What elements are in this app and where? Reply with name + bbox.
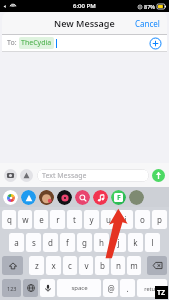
button[interactable]: Change keyboard xyxy=(23,279,38,297)
button[interactable]: f xyxy=(60,233,75,252)
staticText: t xyxy=(73,214,76,225)
button[interactable]: s xyxy=(26,233,41,252)
button[interactable]: App Store xyxy=(20,169,33,182)
staticText: Text Message xyxy=(42,171,87,181)
button[interactable]: d xyxy=(43,233,58,252)
button[interactable]: Cancel xyxy=(128,14,167,33)
staticText: TheCydia xyxy=(21,38,52,48)
button[interactable]: App 7 xyxy=(129,190,144,205)
button[interactable]: m xyxy=(127,256,141,275)
staticText: New Message xyxy=(54,17,115,29)
button[interactable]: o xyxy=(135,210,150,229)
staticText: s xyxy=(32,237,36,248)
button[interactable]: e xyxy=(34,210,48,229)
button[interactable]: TheCydia xyxy=(21,38,52,48)
button[interactable]: . xyxy=(120,279,135,297)
button[interactable]: q xyxy=(2,210,16,229)
button[interactable]: @ xyxy=(103,279,118,297)
staticText: return xyxy=(144,285,161,292)
button[interactable]: b xyxy=(95,256,109,275)
staticText: l xyxy=(151,237,154,248)
staticText: . xyxy=(126,283,129,294)
staticText: To: xyxy=(7,38,17,48)
button[interactable]: space xyxy=(57,279,101,297)
button[interactable] xyxy=(40,279,55,297)
button[interactable]: u xyxy=(101,210,116,229)
staticText: @ xyxy=(107,283,115,294)
staticText: y xyxy=(89,214,94,225)
button[interactable]: l xyxy=(145,233,160,252)
button[interactable]: n xyxy=(111,256,125,275)
button[interactable]: x xyxy=(46,256,61,275)
button[interactable]: Send xyxy=(152,169,165,182)
button[interactable]: Shift xyxy=(2,256,23,275)
button[interactable]: t xyxy=(67,210,82,229)
staticText: 6:00 PM xyxy=(73,2,96,10)
staticText: 87% xyxy=(144,3,155,10)
staticText: c xyxy=(68,260,72,271)
button[interactable]: j xyxy=(111,233,126,252)
button[interactable]: Backspace xyxy=(147,256,167,275)
button[interactable]: App 1 xyxy=(21,190,36,205)
staticText: Cancel xyxy=(135,18,160,29)
button[interactable]: App 0 xyxy=(3,190,18,205)
staticText: x xyxy=(51,260,56,271)
button[interactable]: Camera xyxy=(4,169,17,182)
staticText: b xyxy=(100,260,105,271)
staticText: m xyxy=(130,260,138,271)
button[interactable]: App 5 xyxy=(93,190,108,205)
staticText: j xyxy=(117,237,120,248)
button[interactable]: p xyxy=(152,210,167,229)
staticText: space xyxy=(71,284,88,292)
staticText: w xyxy=(22,214,29,225)
staticText: o xyxy=(140,214,145,225)
staticText: i xyxy=(124,214,127,225)
staticText: v xyxy=(84,260,89,271)
staticText: TZ xyxy=(157,288,166,298)
staticText: u xyxy=(106,214,111,225)
button[interactable]: App 4 xyxy=(75,190,90,205)
button[interactable]: z xyxy=(29,256,44,275)
staticText: a xyxy=(14,237,19,248)
button[interactable]: i xyxy=(118,210,133,229)
button[interactable]: v xyxy=(79,256,93,275)
staticText: h xyxy=(99,237,104,248)
staticText: r xyxy=(56,214,60,225)
staticText: f xyxy=(66,237,69,248)
button[interactable]: r xyxy=(50,210,65,229)
button[interactable]: k xyxy=(128,233,143,252)
staticText: 123 xyxy=(7,285,17,292)
staticText: e xyxy=(39,214,44,225)
button[interactable]: h xyxy=(94,233,109,252)
staticText: k xyxy=(133,237,138,248)
button[interactable]: Text Message xyxy=(37,169,149,182)
button[interactable]: App 3 xyxy=(57,190,72,205)
button[interactable]: return xyxy=(137,279,167,297)
staticText: z xyxy=(35,260,39,271)
staticText: F xyxy=(117,193,121,202)
button[interactable]: c xyxy=(63,256,77,275)
staticText: p xyxy=(157,214,162,225)
button[interactable]: App 6 xyxy=(111,190,126,205)
staticText: d xyxy=(48,237,53,248)
staticText: n xyxy=(116,260,121,271)
button[interactable]: w xyxy=(18,210,32,229)
button[interactable]: y xyxy=(84,210,99,229)
button[interactable]: g xyxy=(77,233,92,252)
staticText: q xyxy=(7,214,12,225)
staticText: g xyxy=(82,237,87,248)
button[interactable]: Numbers xyxy=(2,279,21,297)
button[interactable]: a xyxy=(9,233,24,252)
button[interactable]: App 2 xyxy=(39,190,54,205)
button[interactable]: Add contact xyxy=(149,37,162,50)
